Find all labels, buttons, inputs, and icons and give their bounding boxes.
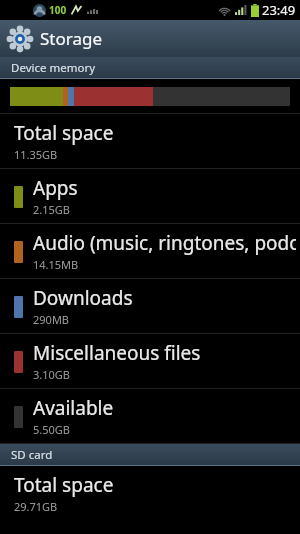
- button[interactable]: Storage: [0, 20, 300, 57]
- button[interactable]: Available: [0, 389, 300, 443]
- staticText: 100: [49, 3, 67, 17]
- staticText: 5.50GB: [33, 422, 70, 437]
- staticText: Downloads: [33, 285, 133, 311]
- staticText: Miscellaneous files: [33, 340, 201, 366]
- staticText: Audio (music, ringtones, podc: [33, 230, 296, 256]
- button[interactable]: Audio (music, ringtones, podc: [0, 224, 300, 278]
- staticText: 29.71GB: [14, 499, 58, 514]
- staticText: 2.15GB: [33, 202, 70, 217]
- staticText: 11.35GB: [14, 147, 58, 162]
- staticText: 290MB: [33, 312, 70, 327]
- staticText: Device memory: [11, 60, 96, 76]
- staticText: Storage: [40, 27, 103, 50]
- button[interactable]: Apps: [0, 169, 300, 223]
- button[interactable]: Total space: [0, 114, 300, 168]
- button[interactable]: Miscellaneous files: [0, 334, 300, 388]
- staticText: 14.15MB: [33, 257, 79, 272]
- staticText: SD card: [11, 447, 53, 463]
- button[interactable]: Total space: [0, 466, 300, 520]
- staticText: 3.10GB: [33, 367, 70, 382]
- staticText: Apps: [33, 175, 78, 201]
- staticText: Total space: [14, 120, 114, 146]
- staticText: Available: [33, 395, 114, 421]
- staticText: 23:49: [262, 1, 296, 19]
- button[interactable]: Downloads: [0, 279, 300, 333]
- staticText: Total space: [14, 472, 114, 498]
